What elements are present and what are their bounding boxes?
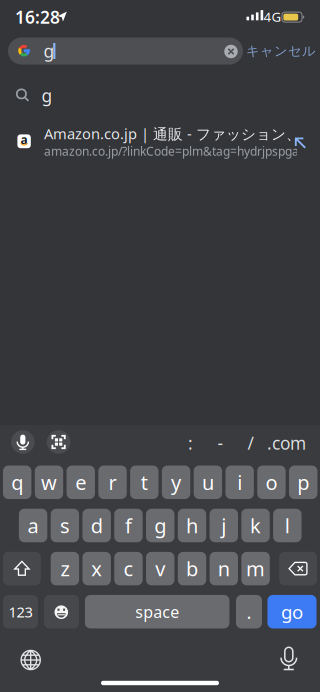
button[interactable]: Next keyboard (16, 645, 46, 675)
staticText: o (265, 469, 277, 496)
button[interactable]: Voice search (11, 430, 35, 454)
button[interactable]: r (98, 466, 127, 499)
staticText: / (247, 431, 253, 454)
button[interactable]: a (0, 117, 320, 167)
button[interactable]: キャンセル (241, 37, 320, 65)
button[interactable]: Search (8, 37, 243, 64)
staticText: v (155, 555, 165, 582)
button[interactable]: n (210, 552, 238, 585)
staticText: i (237, 469, 242, 496)
button[interactable]: b (178, 552, 206, 585)
staticText: n (218, 555, 230, 582)
staticText: g (43, 39, 54, 62)
button[interactable]: g (0, 74, 320, 116)
button[interactable]: - (207, 430, 233, 456)
staticText: 4G (263, 8, 281, 25)
staticText: t (141, 469, 148, 496)
button[interactable]: p (289, 466, 317, 499)
staticText: r (108, 469, 116, 496)
button[interactable]: Scan with camera (47, 430, 70, 454)
button[interactable]: x (82, 552, 111, 585)
button[interactable]: a (19, 509, 47, 542)
button[interactable]: m (241, 552, 270, 585)
staticText: 123 (8, 602, 32, 621)
button[interactable]: Shift (3, 552, 41, 585)
staticText: : (188, 431, 193, 454)
staticText: u (202, 469, 214, 496)
staticText: g (41, 84, 52, 107)
staticText: d (91, 512, 103, 539)
button[interactable]: t (130, 466, 158, 499)
button[interactable]: / (237, 430, 263, 456)
staticText: m (246, 555, 265, 582)
button[interactable]: g (146, 509, 174, 542)
staticText: q (11, 469, 23, 496)
staticText: p (297, 469, 309, 496)
button[interactable]: d (82, 509, 111, 542)
staticText: - (217, 431, 223, 454)
staticText: y (171, 469, 181, 496)
button[interactable]: .com (266, 430, 306, 456)
button[interactable]: y (162, 466, 190, 499)
staticText: z (60, 555, 69, 582)
button[interactable]: 123 (3, 595, 38, 628)
staticText: f (125, 512, 132, 539)
staticText: j (221, 512, 226, 539)
button[interactable]: : (177, 430, 203, 456)
button[interactable]: Dictate (274, 644, 304, 674)
button[interactable]: Emoji (44, 595, 79, 628)
button[interactable]: Delete (279, 552, 317, 585)
staticText: a (21, 132, 28, 147)
button[interactable]: i (225, 466, 254, 499)
staticText: e (75, 469, 86, 496)
button[interactable]: j (210, 509, 238, 542)
button[interactable]: space (85, 595, 229, 628)
button[interactable]: f (114, 509, 143, 542)
button[interactable]: k (241, 509, 270, 542)
staticText: amazon.co.jp/?linkCode=plm&tag=hydrjpspg… (44, 143, 299, 159)
button[interactable]: . (236, 595, 262, 628)
staticText: キャンセル (246, 43, 316, 59)
button[interactable]: go (267, 595, 316, 628)
button[interactable]: o (257, 466, 286, 499)
button[interactable]: e (67, 466, 95, 499)
button[interactable]: w (35, 466, 63, 499)
button[interactable]: Clear text (0, 0, 320, 692)
staticText: g (154, 512, 166, 539)
staticText: space (135, 601, 179, 622)
staticText: . (246, 599, 251, 624)
staticText: k (250, 512, 261, 539)
button[interactable]: z (51, 552, 79, 585)
button[interactable]: q (3, 466, 31, 499)
staticText: s (60, 512, 70, 539)
button[interactable]: v (146, 552, 174, 585)
staticText: .com (267, 431, 306, 454)
button[interactable]: h (178, 509, 206, 542)
staticText: x (91, 555, 102, 582)
button[interactable]: Insert suggestion (0, 0, 320, 692)
staticText: go (281, 599, 303, 624)
staticText: w (41, 469, 57, 496)
staticText: b (186, 555, 198, 582)
button[interactable]: u (194, 466, 222, 499)
button[interactable]: l (273, 509, 301, 542)
staticText: h (186, 512, 198, 539)
staticText: l (285, 512, 290, 539)
staticText: 16:28 (15, 5, 60, 28)
staticText: a (28, 512, 39, 539)
staticText: c (123, 555, 133, 582)
staticText: Amazon.co.jp | 通販 - ファッション、家電 (44, 124, 320, 143)
button[interactable]: s (51, 509, 79, 542)
button[interactable]: c (114, 552, 143, 585)
